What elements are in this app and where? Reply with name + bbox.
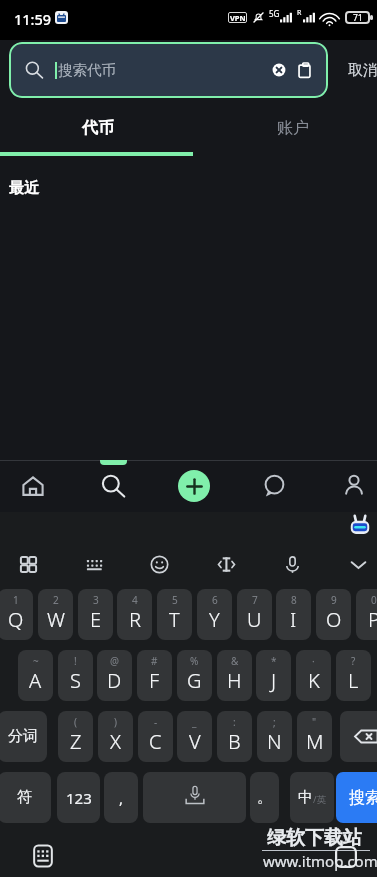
button[interactable]: 5 bbox=[157, 589, 192, 640]
staticText: P bbox=[368, 606, 377, 633]
staticText: O bbox=[326, 606, 342, 633]
button[interactable]: 搜索代币 bbox=[9, 42, 328, 98]
button[interactable]: ! bbox=[58, 650, 93, 701]
button[interactable]: : bbox=[217, 711, 252, 762]
button[interactable]: 搜索 bbox=[336, 772, 377, 823]
button[interactable]: 123 bbox=[57, 772, 100, 823]
button[interactable]: 8 bbox=[276, 589, 311, 640]
staticText: 1 bbox=[13, 593, 19, 607]
button[interactable]: ~ bbox=[18, 650, 53, 701]
staticText: 符 bbox=[17, 788, 32, 807]
staticText: E bbox=[90, 606, 102, 633]
button[interactable]: 代币 bbox=[0, 105, 195, 155]
staticText: · bbox=[312, 654, 315, 668]
staticText: Q bbox=[8, 606, 24, 633]
button[interactable]: ) bbox=[98, 711, 133, 762]
staticText: W bbox=[47, 606, 65, 633]
button[interactable]: Emoji bbox=[137, 542, 181, 586]
staticText: 2 bbox=[53, 593, 59, 607]
staticText: 代币 bbox=[82, 118, 114, 138]
staticText: ( bbox=[74, 715, 77, 729]
staticText: 6 bbox=[212, 593, 218, 607]
button[interactable]: Apps bbox=[6, 542, 50, 586]
staticText: 4 bbox=[132, 593, 138, 607]
button[interactable]: - bbox=[138, 711, 173, 762]
button[interactable]: ; bbox=[257, 711, 292, 762]
button[interactable]: 账户 bbox=[195, 105, 377, 155]
button[interactable]: Hide keyboard bbox=[336, 542, 377, 586]
staticText: H bbox=[227, 667, 242, 694]
button[interactable]: 2 bbox=[38, 589, 73, 640]
button[interactable]: Add bbox=[178, 470, 210, 502]
staticText: 71 bbox=[353, 12, 363, 24]
button[interactable]: Search bbox=[87, 461, 139, 511]
button[interactable]: Messages bbox=[248, 461, 300, 511]
button[interactable]: Paste bbox=[294, 60, 314, 80]
button[interactable]: Backspace bbox=[340, 711, 377, 762]
staticText: D bbox=[107, 667, 122, 694]
staticText: 账户 bbox=[277, 118, 309, 138]
staticText: 5G bbox=[269, 8, 280, 19]
staticText: Z bbox=[70, 728, 82, 755]
button[interactable]: Switch keyboard bbox=[26, 838, 60, 872]
button[interactable]: 符 bbox=[0, 772, 51, 823]
button[interactable]: 7 bbox=[237, 589, 272, 640]
button[interactable]: % bbox=[177, 650, 212, 701]
staticText: , bbox=[119, 788, 124, 808]
button[interactable]: @ bbox=[97, 650, 132, 701]
button[interactable]: Voice input bbox=[270, 542, 314, 586]
button[interactable]: , bbox=[104, 772, 138, 823]
staticText: N bbox=[267, 728, 282, 755]
staticText: R bbox=[129, 606, 141, 633]
staticText: U bbox=[247, 606, 262, 633]
staticText: K bbox=[308, 667, 320, 694]
staticText: 11:59 bbox=[14, 9, 52, 29]
button[interactable]: 。 bbox=[250, 772, 279, 823]
button[interactable]: Profile bbox=[328, 461, 377, 511]
button[interactable]: # bbox=[137, 650, 172, 701]
staticText: Y bbox=[209, 606, 220, 633]
button[interactable]: · bbox=[296, 650, 331, 701]
button[interactable]: " bbox=[297, 711, 332, 762]
button[interactable]: 0 bbox=[356, 589, 377, 640]
staticText: * bbox=[271, 654, 277, 668]
staticText: : bbox=[233, 715, 236, 729]
button[interactable]: 1 bbox=[0, 589, 33, 640]
button[interactable]: ( bbox=[58, 711, 93, 762]
button[interactable]: * bbox=[256, 650, 291, 701]
staticText: G bbox=[187, 667, 202, 694]
staticText: 中 bbox=[298, 788, 313, 807]
button[interactable]: AI assistant bbox=[349, 515, 371, 537]
staticText: 0 bbox=[371, 593, 377, 607]
staticText: www.itmop.com bbox=[263, 851, 377, 871]
staticText: 最近 bbox=[9, 179, 39, 198]
staticText: S bbox=[70, 667, 81, 694]
button[interactable]: 4 bbox=[117, 589, 152, 640]
staticText: R bbox=[297, 8, 302, 18]
staticText: ) bbox=[114, 715, 117, 729]
button[interactable]: 9 bbox=[316, 589, 351, 640]
button[interactable]: ? bbox=[336, 650, 371, 701]
button[interactable]: _ bbox=[177, 711, 212, 762]
staticText: ? bbox=[351, 654, 356, 668]
staticText: 绿软下载站 bbox=[267, 826, 362, 850]
staticText: 8 bbox=[291, 593, 297, 607]
button[interactable]: 分词 bbox=[0, 711, 47, 762]
button[interactable]: Home bbox=[7, 461, 59, 511]
button[interactable]: Keyboard layout bbox=[72, 542, 116, 586]
button[interactable]: & bbox=[217, 650, 252, 701]
button[interactable]: 6 bbox=[197, 589, 232, 640]
staticText: _ bbox=[192, 715, 197, 729]
button[interactable]: 3 bbox=[78, 589, 113, 640]
button[interactable]: Text editing bbox=[204, 542, 248, 586]
button[interactable]: 取消 bbox=[337, 42, 377, 99]
staticText: 7 bbox=[252, 593, 258, 607]
staticText: 。 bbox=[257, 788, 272, 807]
button[interactable]: Clear text bbox=[269, 60, 289, 80]
button[interactable]: Space bbox=[143, 772, 246, 823]
staticText: M bbox=[306, 728, 324, 755]
staticText: # bbox=[151, 654, 158, 668]
staticText: ! bbox=[74, 654, 77, 668]
staticText: VPN bbox=[230, 13, 246, 23]
button[interactable]: 中 bbox=[290, 772, 334, 823]
